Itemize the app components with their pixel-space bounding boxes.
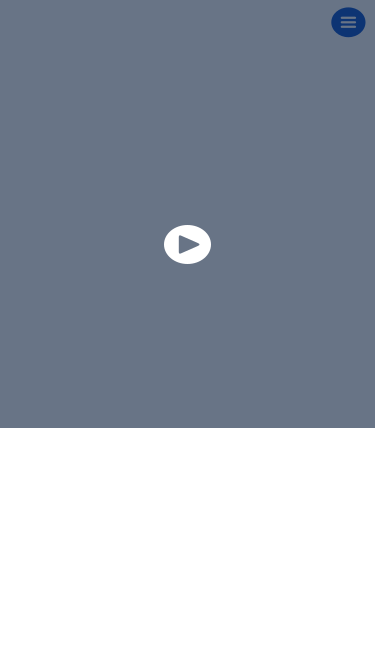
button[interactable]: Play [164, 225, 211, 264]
button[interactable]: Menu [331, 7, 365, 37]
